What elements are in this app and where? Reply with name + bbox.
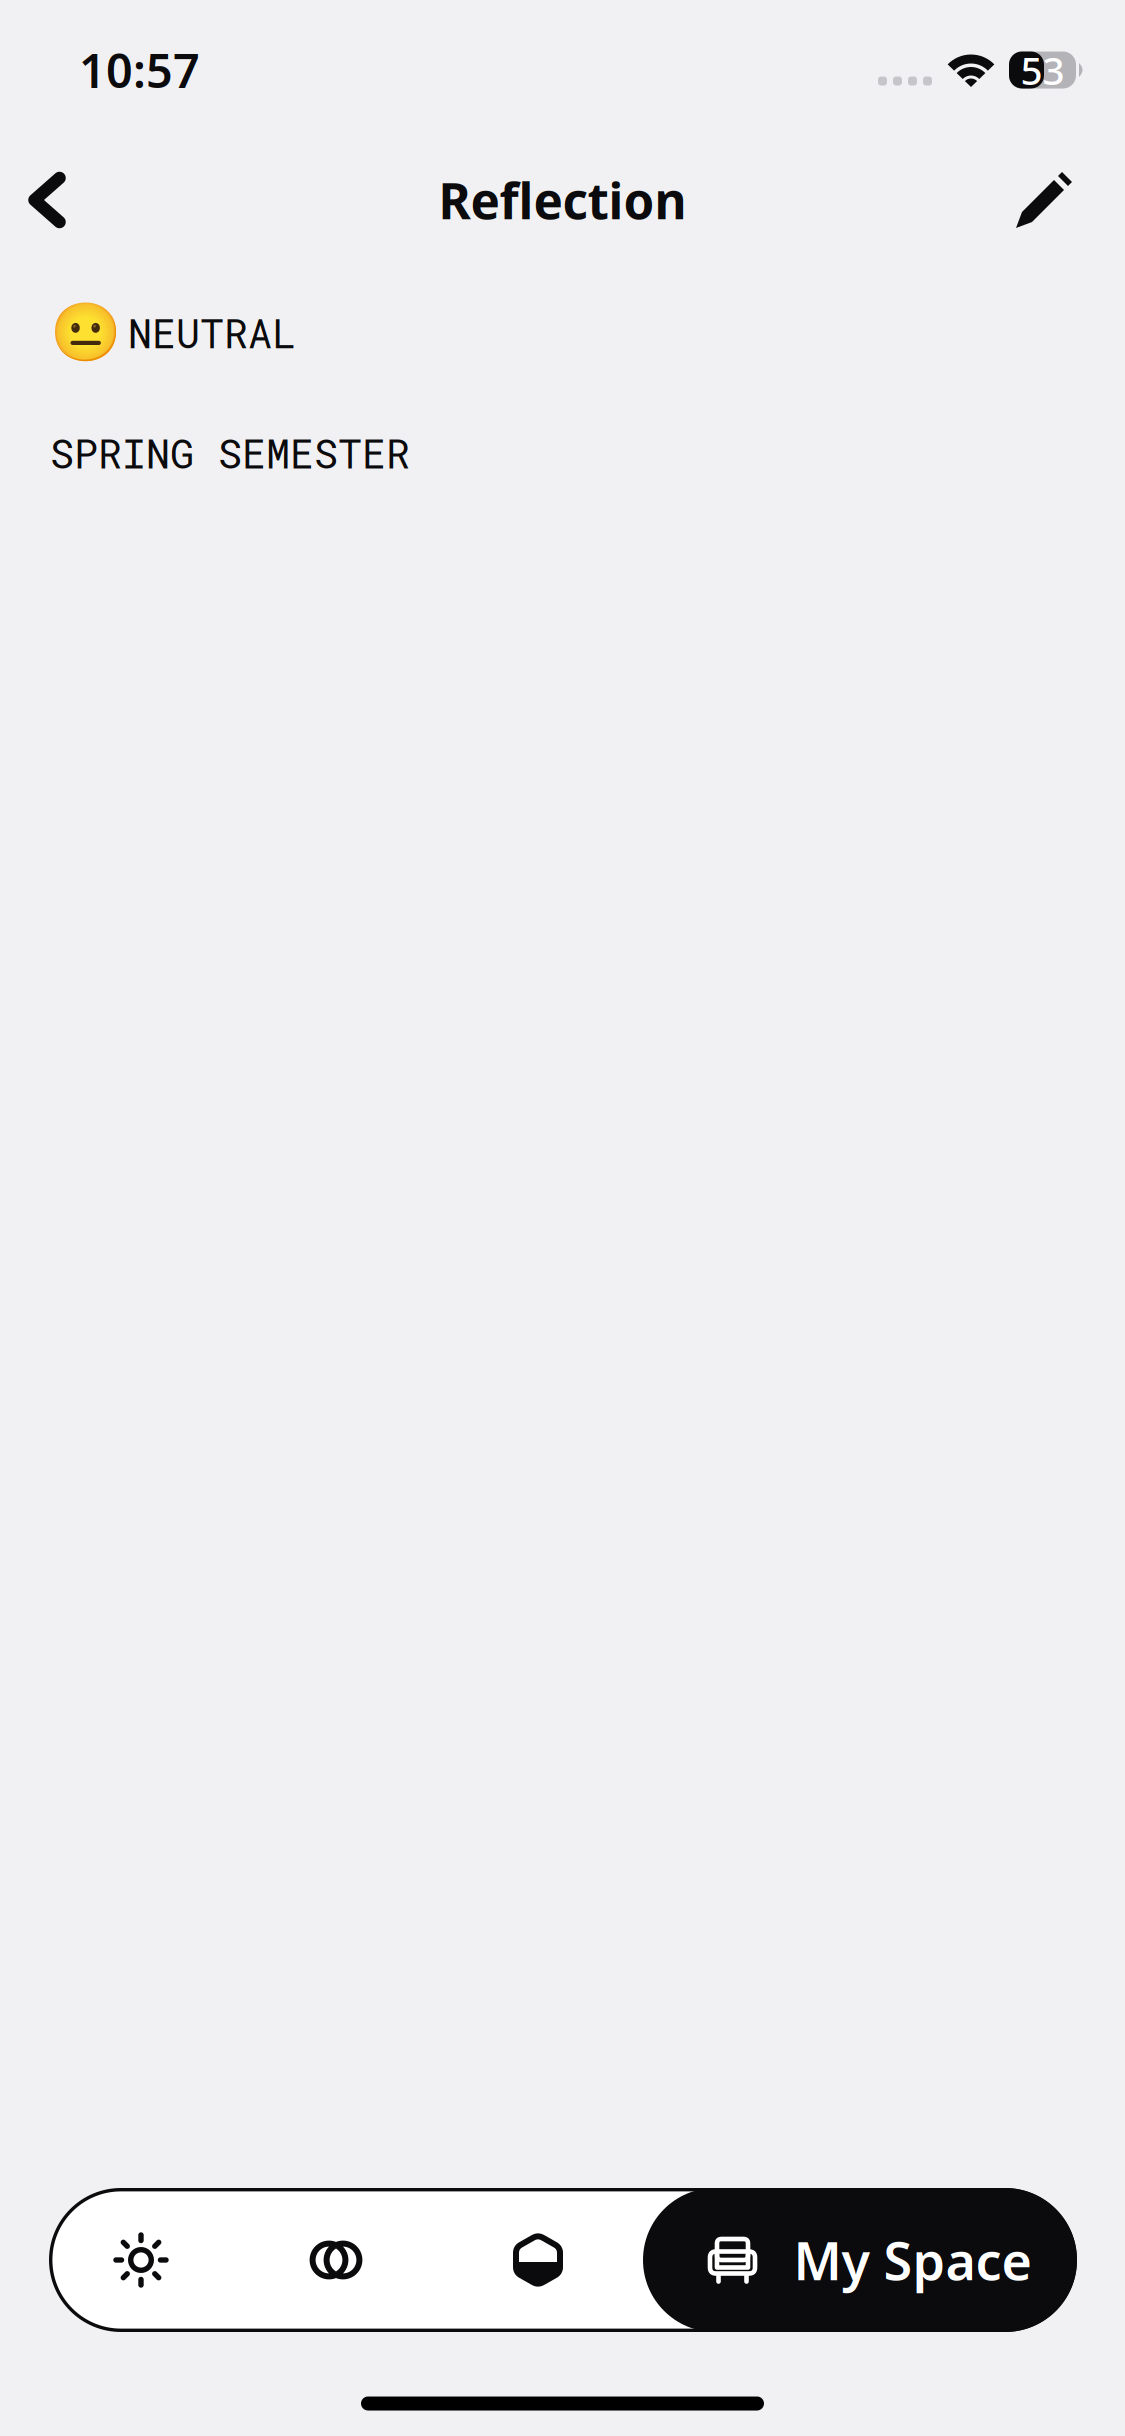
button[interactable]: Back <box>0 148 97 252</box>
staticText: My Space <box>793 2225 1031 2295</box>
button[interactable]: Theme <box>439 2188 637 2332</box>
button[interactable]: Brightness <box>49 2188 233 2332</box>
staticText: 53 <box>1020 44 1064 96</box>
staticText: SPRING SEMESTER <box>50 426 410 479</box>
staticText: 😐 <box>50 300 121 365</box>
staticText: Reflection <box>438 167 686 233</box>
button[interactable]: Contrast <box>233 2188 439 2332</box>
button[interactable]: Edit <box>994 148 1094 252</box>
button[interactable]: My Space <box>643 2188 1077 2332</box>
staticText: 10:57 <box>79 39 200 101</box>
staticText: NEUTRAL <box>128 306 296 359</box>
